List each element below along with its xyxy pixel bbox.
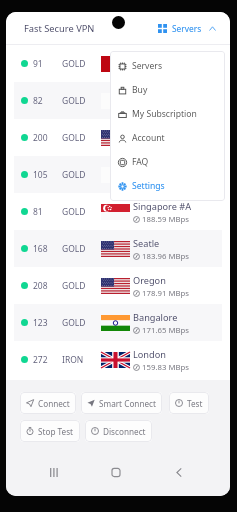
- staticText: Test: [187, 398, 203, 409]
- staticText: Account: [132, 132, 165, 144]
- staticText: GOLD: [62, 206, 86, 218]
- staticText: 178.91 MBps: [142, 288, 190, 299]
- staticText: Settings: [132, 180, 165, 192]
- button[interactable]: Smart Connect: [81, 392, 162, 414]
- staticText: Seatle: [133, 237, 160, 250]
- staticText: GOLD: [62, 317, 86, 329]
- staticText: Oregon: [133, 274, 166, 287]
- staticText: 123: [33, 317, 48, 329]
- button[interactable]: 168: [14, 230, 222, 267]
- staticText: GOLD: [62, 95, 86, 107]
- staticText: GOLD: [62, 58, 86, 70]
- staticText: Servers: [172, 23, 202, 34]
- staticText: GOLD: [62, 132, 86, 144]
- button[interactable]: 81: [14, 193, 222, 230]
- button[interactable]: 200: [14, 119, 222, 156]
- staticText: 81: [33, 206, 43, 218]
- staticText: 200: [33, 132, 48, 144]
- button[interactable]: Disconnect: [85, 420, 152, 442]
- button[interactable]: Recents: [43, 461, 65, 483]
- button[interactable]: Account: [110, 126, 225, 150]
- staticText: GOLD: [62, 169, 86, 181]
- staticText: 82: [33, 95, 43, 107]
- staticText: Servers: [132, 60, 162, 72]
- button[interactable]: Test: [169, 392, 209, 414]
- staticText: Stop Test: [38, 426, 74, 437]
- staticText: Singapore #A: [133, 200, 192, 213]
- button[interactable]: Back: [168, 461, 190, 483]
- staticText: Fast Secure VPN: [24, 22, 95, 35]
- button[interactable]: 105: [14, 156, 222, 193]
- staticText: My Subscription: [132, 108, 197, 120]
- button[interactable]: 272: [14, 341, 222, 378]
- button[interactable]: Home: [105, 461, 127, 483]
- staticText: FAQ: [132, 156, 149, 168]
- staticText: Buy: [132, 84, 148, 96]
- staticText: 183.96 MBps: [142, 251, 190, 262]
- button[interactable]: Buy: [110, 78, 225, 102]
- staticText: Connect: [38, 398, 70, 409]
- staticText: 272: [33, 354, 48, 366]
- button[interactable]: Servers: [110, 54, 225, 78]
- button[interactable]: FAQ: [110, 150, 225, 174]
- button[interactable]: My Subscription: [110, 102, 225, 126]
- staticText: IRON: [62, 354, 84, 366]
- button[interactable]: 208: [14, 267, 222, 304]
- staticText: London: [133, 348, 166, 361]
- staticText: 188.59 MBps: [142, 214, 190, 225]
- button[interactable]: 82: [14, 82, 222, 119]
- staticText: 159.83 MBps: [142, 362, 190, 373]
- staticText: 168: [33, 243, 48, 255]
- staticText: 91: [33, 58, 43, 70]
- staticText: 105: [33, 169, 48, 181]
- staticText: 171.65 MBps: [142, 325, 190, 336]
- staticText: GOLD: [62, 280, 86, 292]
- staticText: GOLD: [62, 243, 86, 255]
- button[interactable]: 91: [14, 45, 222, 82]
- staticText: Bangalore: [133, 311, 178, 324]
- button[interactable]: Servers: [156, 19, 218, 38]
- button[interactable]: Connect: [20, 392, 76, 414]
- button[interactable]: Settings: [110, 174, 225, 198]
- staticText: Disconnect: [103, 426, 146, 437]
- staticText: Smart Connect: [99, 398, 156, 409]
- staticText: 208: [33, 280, 48, 292]
- button[interactable]: 123: [14, 304, 222, 341]
- button[interactable]: Stop Test: [20, 420, 80, 442]
